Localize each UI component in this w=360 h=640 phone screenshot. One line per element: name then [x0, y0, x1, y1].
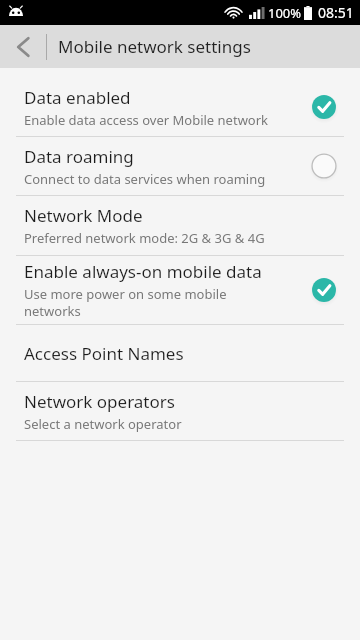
- staticText: Select a network operator: [24, 415, 182, 433]
- button[interactable]: Back: [0, 25, 46, 68]
- button[interactable]: Network Mode: [0, 196, 360, 255]
- button[interactable]: Enable always-on mobile data: [0, 256, 360, 324]
- staticText: Connect to data services when roaming: [24, 170, 266, 188]
- staticText: Use more power on some mobile networks: [24, 285, 227, 320]
- staticText: Data roaming: [24, 145, 134, 168]
- staticText: Access Point Names: [24, 342, 184, 365]
- button[interactable]: On: [304, 87, 344, 127]
- staticText: Enable data access over Mobile network: [24, 111, 269, 129]
- staticText: 100%: [268, 4, 302, 22]
- button[interactable]: Data enabled: [0, 78, 360, 136]
- button[interactable]: Off: [304, 146, 344, 186]
- button[interactable]: Data roaming: [0, 137, 360, 195]
- staticText: Network Mode: [24, 204, 143, 227]
- button[interactable]: Network operators: [0, 382, 360, 440]
- staticText: Enable always-on mobile data: [24, 260, 262, 283]
- staticText: Mobile network settings: [58, 35, 251, 58]
- staticText: Data enabled: [24, 86, 131, 109]
- button[interactable]: Access Point Names: [0, 325, 360, 381]
- staticText: Preferred network mode: 2G & 3G & 4G: [24, 229, 265, 247]
- staticText: 08:51: [318, 3, 354, 22]
- button[interactable]: On: [304, 270, 344, 310]
- staticText: Network operators: [24, 390, 175, 413]
